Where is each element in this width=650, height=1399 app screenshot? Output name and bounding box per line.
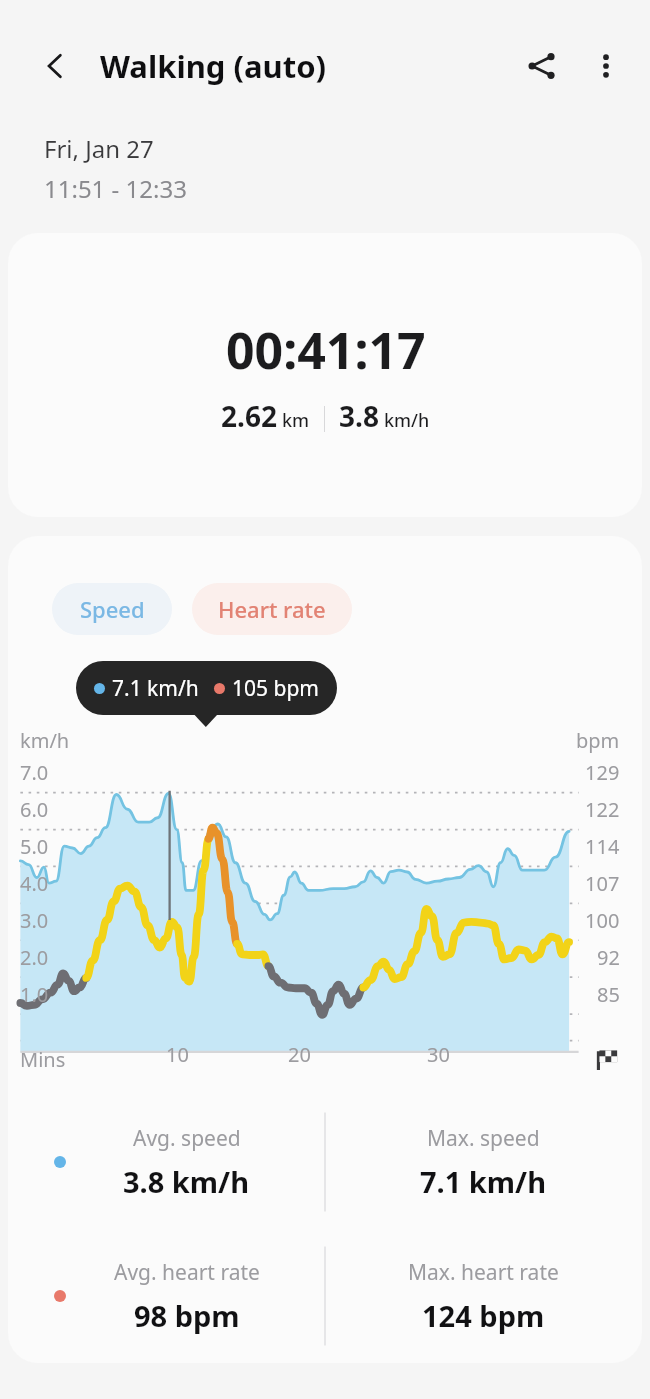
- button[interactable]: Back: [24, 35, 86, 97]
- button[interactable]: Avg. speed: [8, 1095, 325, 1229]
- staticText: Avg. speed: [133, 1124, 241, 1153]
- staticText: 92: [597, 944, 620, 971]
- staticText: 3.0: [20, 907, 49, 934]
- staticText: 3.8 km/h: [123, 1162, 250, 1201]
- staticText: 3.8: [339, 397, 379, 435]
- button[interactable]: Max. heart rate: [325, 1229, 642, 1363]
- button[interactable]: Heart rate: [192, 583, 352, 635]
- staticText: Max. heart rate: [408, 1258, 559, 1287]
- staticText: Mins: [20, 1046, 66, 1073]
- staticText: 124 bpm: [422, 1296, 545, 1335]
- staticText: 7.1 km/h: [420, 1162, 547, 1201]
- staticText: 129: [585, 759, 620, 786]
- staticText: 4.0: [20, 870, 49, 897]
- staticText: Speed: [80, 594, 145, 624]
- staticText: 6.0: [20, 796, 49, 823]
- button[interactable]: Share: [510, 34, 574, 98]
- staticText: 5.0: [20, 833, 49, 860]
- staticText: Heart rate: [218, 594, 326, 624]
- staticText: 00:41:17: [226, 316, 426, 384]
- staticText: 1.0: [20, 981, 49, 1008]
- staticText: 30: [427, 1041, 450, 1068]
- other: Finish: [594, 1046, 620, 1072]
- staticText: Max. speed: [427, 1124, 540, 1153]
- staticText: 100: [585, 907, 620, 934]
- button[interactable]: Speed: [52, 583, 172, 635]
- staticText: 20: [288, 1041, 311, 1068]
- staticText: 11:51 - 12:33: [44, 172, 187, 205]
- staticText: 107: [585, 870, 620, 897]
- staticText: 7.0: [20, 759, 49, 786]
- staticText: 7.1 km/h: [112, 674, 199, 703]
- staticText: km/h: [384, 408, 430, 433]
- button[interactable]: More options: [574, 34, 638, 98]
- staticText: Avg. heart rate: [114, 1258, 260, 1287]
- staticText: 2.62: [221, 397, 277, 435]
- staticText: km: [282, 408, 310, 433]
- staticText: 85: [597, 981, 620, 1008]
- staticText: km/h: [20, 727, 70, 754]
- staticText: 98 bpm: [134, 1296, 240, 1335]
- staticText: 10: [166, 1041, 189, 1068]
- staticText: bpm: [576, 727, 620, 754]
- staticText: Fri, Jan 27: [44, 132, 154, 165]
- button[interactable]: Avg. heart rate: [8, 1229, 325, 1363]
- button[interactable]: 00:41:17: [8, 233, 642, 517]
- staticText: 114: [585, 833, 620, 860]
- staticText: 2.0: [20, 944, 49, 971]
- button[interactable]: Max. speed: [325, 1095, 642, 1229]
- staticText: 122: [585, 796, 620, 823]
- staticText: 105 bpm: [232, 674, 319, 703]
- staticText: Walking (auto): [100, 45, 327, 87]
